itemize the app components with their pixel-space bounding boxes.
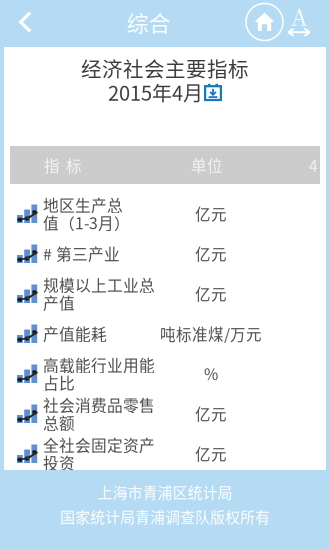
button[interactable]: Home xyxy=(245,0,284,44)
staticText: 亿元 xyxy=(195,243,227,264)
staticText: 社会消费品零售 总额 xyxy=(43,396,155,431)
staticText: 亿元 xyxy=(195,443,227,464)
staticText: 4 xyxy=(309,155,318,175)
button[interactable]: 全社会固定资产 投资 xyxy=(4,433,326,473)
staticText: 高载能行业用能 占比 xyxy=(43,356,155,391)
staticText: 亿元 xyxy=(195,403,227,424)
staticText: % xyxy=(204,363,218,384)
staticText: 综合 xyxy=(126,8,170,36)
button[interactable]: Back xyxy=(0,0,44,44)
staticText: A xyxy=(291,0,307,32)
button[interactable]: # 第三产业 xyxy=(4,233,326,273)
button[interactable]: 产值能耗 xyxy=(4,313,326,353)
staticText: 指 标 xyxy=(44,155,82,175)
staticText: 2015年4月 xyxy=(108,79,203,105)
button[interactable]: 社会消费品零售 总额 xyxy=(4,393,326,433)
staticText: 规模以上工业总 产值 xyxy=(43,276,155,311)
staticText: 亿元 xyxy=(195,203,227,224)
button[interactable]: 规模以上工业总 产值 xyxy=(4,273,326,313)
staticText: 亿元 xyxy=(195,283,227,304)
staticText: 单位 xyxy=(191,155,223,175)
button[interactable]: Text size xyxy=(284,0,314,44)
staticText: 全社会固定资产 投资 xyxy=(43,436,155,471)
staticText: 经济社会主要指标 xyxy=(81,55,249,81)
button[interactable]: 地区生产总 值（1-3月） xyxy=(4,193,326,233)
staticText: 国家统计局青浦调查队版权所有 xyxy=(60,507,270,526)
staticText: 地区生产总 值（1-3月） xyxy=(43,196,130,231)
staticText: 吨标准煤/万元 xyxy=(160,323,262,344)
button[interactable]: Choose month xyxy=(204,83,222,101)
staticText: 产值能耗 xyxy=(43,325,107,342)
button[interactable]: 高载能行业用能 占比 xyxy=(4,353,326,393)
staticText: # 第三产业 xyxy=(43,245,120,262)
staticText: 上海市青浦区统计局 xyxy=(97,482,232,502)
